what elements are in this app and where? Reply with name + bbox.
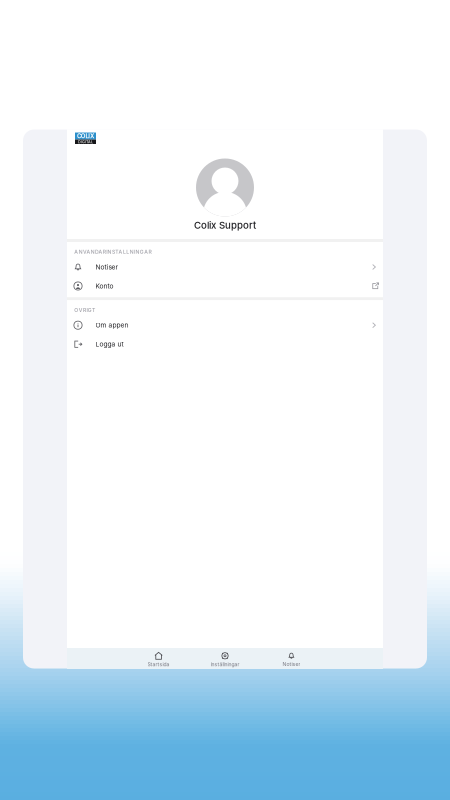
button[interactable]: Om appen [67,316,383,335]
button[interactable]: Konto [67,276,383,295]
button[interactable]: Inställningar [192,648,258,668]
staticText: Colix Support [194,219,256,231]
staticText: Startsida [148,661,170,667]
staticText: Om appen [96,321,129,329]
staticText: ÖVRIGT [74,307,95,313]
staticText: Konto [96,282,114,290]
button[interactable]: Logga ut [67,335,383,354]
button[interactable]: Notiser [258,648,325,668]
staticText: ANVÄNDARINSTÄLLNINGAR [74,249,151,255]
staticText: DIGITAL [78,139,93,144]
staticText: Inställningar [210,661,239,667]
staticText: Notiser [96,263,118,271]
button[interactable]: Notiser [67,257,383,276]
button[interactable]: Startsida [125,648,192,668]
staticText: Notiser [282,661,300,667]
staticText: Logga ut [96,340,124,348]
staticText: COLIX [77,132,94,139]
